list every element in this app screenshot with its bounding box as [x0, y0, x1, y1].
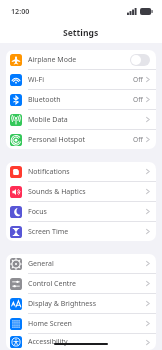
button[interactable]: Accessibility — [6, 334, 156, 350]
button[interactable]: Control Centre — [6, 274, 156, 293]
button[interactable]: Airplane Mode — [6, 50, 156, 69]
staticText: Personal Hotspot — [28, 135, 133, 145]
staticText: Control Centre — [28, 279, 146, 289]
staticText: Screen Time — [28, 227, 146, 237]
staticText: Off — [133, 75, 143, 84]
button[interactable]: Wi-Fi — [6, 70, 156, 89]
button[interactable]: Bluetooth — [6, 90, 156, 109]
button[interactable]: Screen Time — [6, 222, 156, 241]
button[interactable]: Focus — [6, 202, 156, 221]
staticText: Bluetooth — [28, 95, 133, 105]
staticText: 12:00 — [11, 6, 30, 16]
staticText: Focus — [28, 207, 146, 217]
button[interactable]: General — [6, 254, 156, 273]
staticText: Wi-Fi — [28, 75, 133, 85]
staticText: Settings — [63, 27, 99, 39]
staticText: Accessibility — [28, 337, 146, 347]
button[interactable]: Mobile Data — [6, 110, 156, 129]
staticText: Mobile Data — [28, 115, 146, 125]
staticText: Off — [133, 95, 143, 104]
button[interactable]: Home Screen — [6, 314, 156, 333]
staticText: Off — [133, 135, 143, 144]
staticText: Home Screen — [28, 319, 146, 329]
staticText: Airplane Mode — [28, 55, 130, 65]
staticText: Notifications — [28, 167, 146, 177]
staticText: General — [28, 259, 146, 269]
button[interactable]: Sounds & Haptics — [6, 182, 156, 201]
staticText: Display & Brightness — [28, 299, 146, 309]
button[interactable]: Display & Brightness — [6, 294, 156, 313]
button[interactable]: Airplane Mode toggle — [130, 54, 150, 66]
button[interactable]: Personal Hotspot — [6, 130, 156, 149]
staticText: Sounds & Haptics — [28, 187, 146, 197]
button[interactable]: Notifications — [6, 162, 156, 181]
